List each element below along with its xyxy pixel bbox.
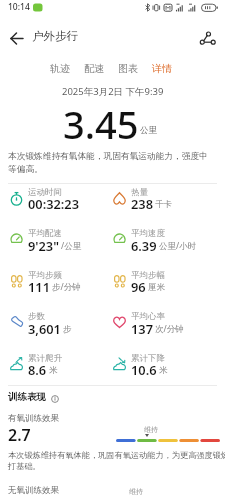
staticText: 图表: [118, 62, 138, 75]
staticText: 238: [131, 195, 153, 212]
staticText: 本次锻炼维持有氧体能，巩固有氧运动能力，为更高强度锻炼: [8, 450, 225, 460]
staticText: 6.39: [131, 237, 157, 254]
staticText: 3,601: [28, 320, 61, 337]
staticText: 户外步行: [32, 29, 78, 43]
staticText: 无氧训练效果: [8, 485, 59, 496]
staticText: 3.45: [63, 98, 139, 150]
button[interactable]: 轨迹: [43, 59, 77, 77]
button[interactable]: 配速: [77, 59, 111, 77]
staticText: 平均步频: [28, 270, 62, 281]
staticText: 打基础。: [8, 461, 41, 471]
staticText: 公里/小时: [159, 240, 197, 252]
staticText: 公里: [140, 125, 157, 136]
staticText: 9'23": [28, 237, 59, 254]
staticText: 热量: [131, 187, 148, 198]
staticText: 步数: [28, 311, 45, 322]
staticText: 配速: [84, 62, 104, 75]
staticText: /公里: [61, 240, 82, 252]
staticText: 等偏高。: [8, 164, 43, 175]
button[interactable]: [196, 29, 220, 53]
staticText: 平均配速: [28, 228, 62, 239]
staticText: 平均步幅: [131, 270, 165, 281]
button[interactable]: [4, 28, 30, 54]
staticText: 平均心率: [131, 311, 165, 322]
staticText: 00:32:23: [28, 195, 79, 212]
staticText: 训练表现: [8, 391, 46, 403]
staticText: 137: [131, 320, 153, 337]
staticText: 运动时间: [28, 187, 62, 198]
staticText: 详情: [152, 62, 172, 75]
staticText: 轨迹: [50, 62, 70, 75]
staticText: 次/分钟: [155, 323, 184, 335]
staticText: 8.6: [28, 361, 47, 378]
staticText: 累计下降: [131, 353, 165, 364]
staticText: 有氧训练效果: [8, 413, 59, 424]
staticText: 千卡: [155, 199, 172, 210]
staticText: 米: [49, 365, 58, 376]
staticText: 111: [28, 278, 50, 295]
staticText: 累计爬升: [28, 353, 62, 364]
button[interactable]: 详情: [145, 59, 179, 77]
staticText: 2025年3月2日 下午9:39: [62, 85, 164, 98]
staticText: 米: [159, 365, 168, 376]
staticText: 步/分钟: [52, 281, 81, 293]
staticText: 平均速度: [131, 228, 165, 239]
staticText: 2.7: [8, 424, 31, 446]
button[interactable]: 图表: [111, 59, 145, 77]
staticText: 10:14: [8, 1, 30, 13]
staticText: 本次锻炼维持有氧体能，巩固有氧运动能力，强度中: [8, 151, 208, 162]
staticText: 10.6: [131, 361, 157, 378]
staticText: 步: [63, 324, 72, 335]
staticText: 96: [131, 278, 146, 295]
staticText: 维持: [144, 425, 158, 434]
staticText: 维持: [129, 487, 143, 496]
staticText: 厘米: [148, 282, 165, 293]
